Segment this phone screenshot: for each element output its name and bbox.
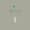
button[interactable]: Status: [13, 5, 15, 8]
staticText: Watering: [9, 10, 21, 13]
button[interactable]: Level: [14, 17, 16, 23]
